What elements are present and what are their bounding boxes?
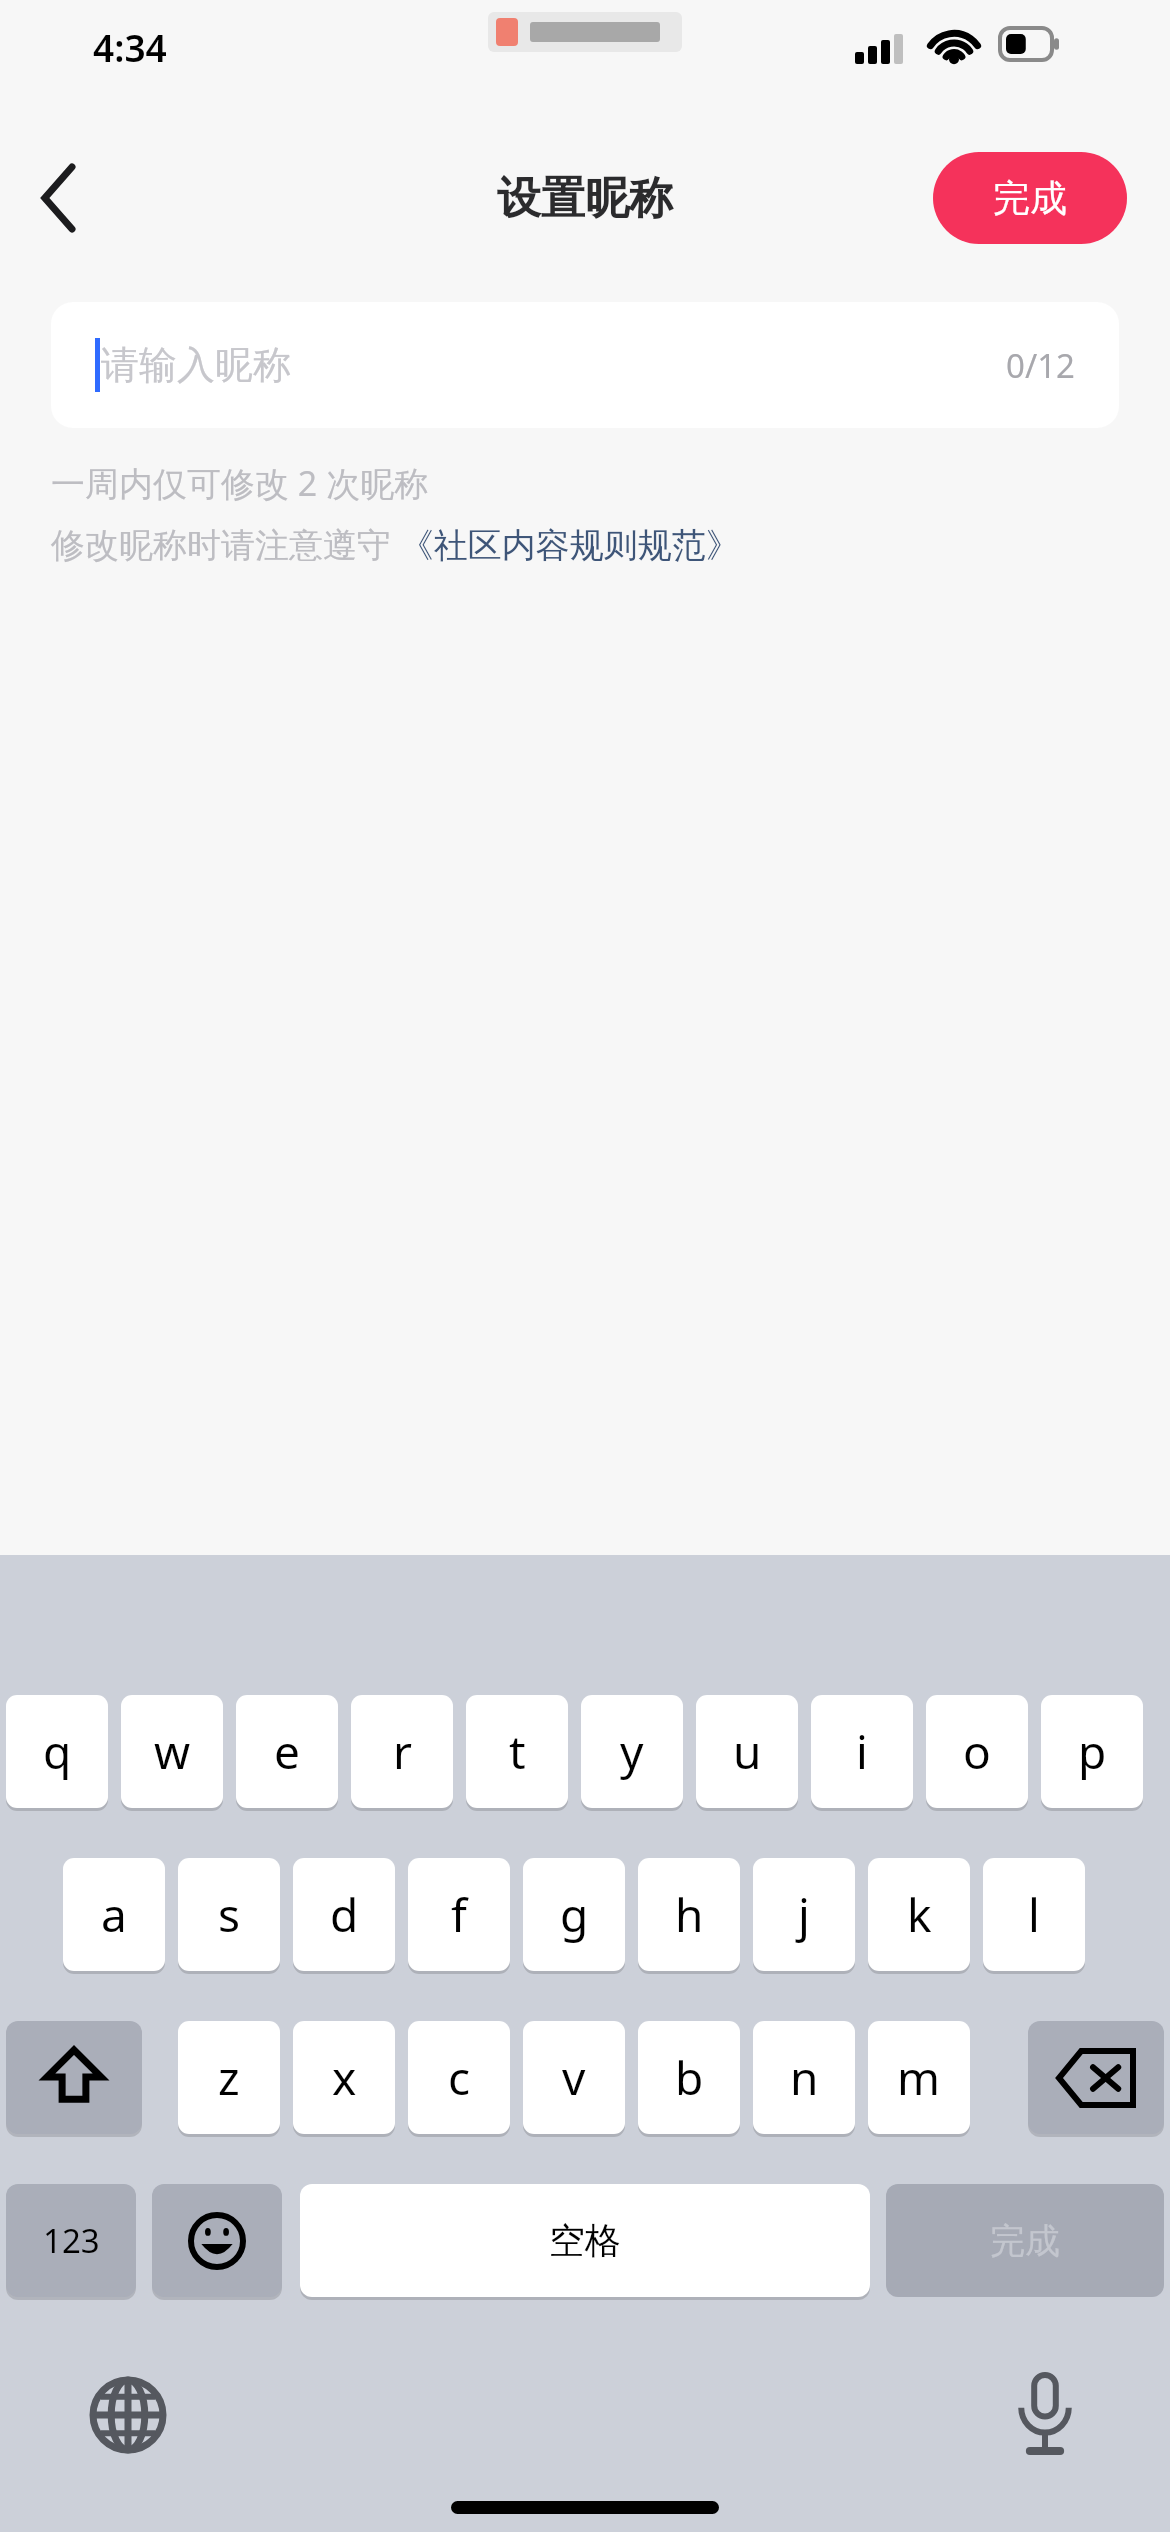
- button[interactable]: c: [408, 2021, 510, 2134]
- staticText: q: [43, 1720, 72, 1783]
- staticText: b: [675, 2046, 704, 2109]
- staticText: 一周内仅可修改 2 次昵称: [51, 460, 429, 506]
- button[interactable]: a: [63, 1858, 165, 1971]
- staticText: h: [675, 1883, 704, 1946]
- button[interactable]: Emoji: [152, 2184, 282, 2297]
- button[interactable]: t: [466, 1695, 568, 1808]
- button[interactable]: b: [638, 2021, 740, 2134]
- staticText: v: [562, 2046, 586, 2109]
- button[interactable]: 空格: [300, 2184, 870, 2297]
- staticText: u: [733, 1720, 762, 1783]
- button[interactable]: Switch keyboard language: [78, 2365, 178, 2465]
- staticText: x: [332, 2046, 357, 2109]
- staticText: 123: [43, 2218, 100, 2263]
- staticText: z: [218, 2046, 240, 2109]
- button[interactable]: x: [293, 2021, 395, 2134]
- button[interactable]: m: [868, 2021, 970, 2134]
- staticText: 设置昵称: [497, 171, 673, 226]
- button[interactable]: Voice input: [995, 2365, 1095, 2465]
- staticText: l: [1028, 1883, 1040, 1946]
- button[interactable]: k: [868, 1858, 970, 1971]
- staticText: p: [1078, 1720, 1107, 1783]
- button[interactable]: e: [236, 1695, 338, 1808]
- button[interactable]: n: [753, 2021, 855, 2134]
- staticText: 完成: [990, 2219, 1060, 2263]
- button[interactable]: 请输入昵称: [51, 302, 1119, 428]
- button[interactable]: z: [178, 2021, 280, 2134]
- staticText: 4:34: [93, 22, 167, 72]
- staticText: j: [798, 1883, 810, 1946]
- staticText: f: [451, 1883, 467, 1946]
- staticText: w: [154, 1720, 191, 1783]
- button[interactable]: p: [1041, 1695, 1143, 1808]
- button[interactable]: Shift: [6, 2021, 142, 2134]
- staticText: o: [963, 1720, 991, 1783]
- staticText: m: [897, 2046, 941, 2109]
- button[interactable]: r: [351, 1695, 453, 1808]
- button[interactable]: u: [696, 1695, 798, 1808]
- button[interactable]: v: [523, 2021, 625, 2134]
- staticText: g: [560, 1883, 589, 1946]
- button[interactable]: 修改昵称时请注意遵守 《社区内容规则规范》: [51, 521, 740, 567]
- button[interactable]: y: [581, 1695, 683, 1808]
- staticText: c: [448, 2046, 471, 2109]
- button[interactable]: j: [753, 1858, 855, 1971]
- button[interactable]: f: [408, 1858, 510, 1971]
- button[interactable]: 123: [6, 2184, 136, 2297]
- staticText: i: [856, 1720, 868, 1783]
- button[interactable]: i: [811, 1695, 913, 1808]
- button[interactable]: d: [293, 1858, 395, 1971]
- button[interactable]: 完成: [886, 2184, 1164, 2297]
- button[interactable]: w: [121, 1695, 223, 1808]
- button[interactable]: s: [178, 1858, 280, 1971]
- staticText: 空格: [549, 2218, 621, 2263]
- button[interactable]: 完成: [933, 152, 1127, 244]
- staticText: e: [274, 1720, 300, 1783]
- button[interactable]: Back: [10, 150, 110, 246]
- button[interactable]: h: [638, 1858, 740, 1971]
- staticText: r: [393, 1720, 412, 1783]
- staticText: 完成: [993, 175, 1067, 222]
- staticText: k: [907, 1883, 932, 1946]
- button[interactable]: l: [983, 1858, 1085, 1971]
- staticText: 请输入昵称: [101, 341, 291, 389]
- staticText: t: [509, 1720, 526, 1783]
- staticText: y: [620, 1720, 644, 1783]
- button[interactable]: g: [523, 1858, 625, 1971]
- staticText: n: [790, 2046, 819, 2109]
- button[interactable]: o: [926, 1695, 1028, 1808]
- staticText: s: [218, 1883, 241, 1946]
- staticText: 修改昵称时请注意遵守 《社区内容规则规范》: [51, 521, 740, 567]
- button[interactable]: q: [6, 1695, 108, 1808]
- staticText: a: [101, 1883, 127, 1946]
- button[interactable]: Backspace: [1028, 2021, 1164, 2134]
- staticText: 0/12: [1006, 343, 1075, 388]
- staticText: d: [330, 1883, 359, 1946]
